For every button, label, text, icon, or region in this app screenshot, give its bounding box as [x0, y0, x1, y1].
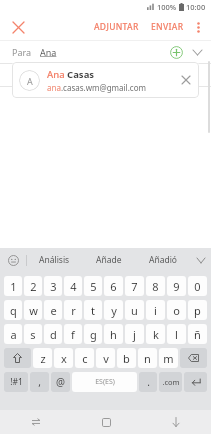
button[interactable]: d — [44, 324, 62, 344]
button[interactable]: 9 — [167, 276, 186, 296]
button[interactable]: q — [4, 300, 22, 320]
staticText: ñ — [194, 327, 201, 342]
button[interactable]: 4 — [64, 276, 82, 296]
button[interactable]: s — [24, 324, 42, 344]
button[interactable]: p — [188, 300, 207, 320]
staticText: ES(ES) — [95, 377, 115, 387]
button[interactable]: b — [117, 348, 136, 368]
button[interactable]: Quitar sugerencia — [178, 72, 194, 88]
button[interactable]: ENVIAR — [147, 17, 188, 37]
button[interactable]: Más sugerencias — [191, 248, 211, 272]
staticText: c — [82, 351, 88, 366]
button[interactable]: u — [125, 300, 144, 320]
staticText: d — [50, 327, 57, 342]
staticText: t — [91, 303, 95, 318]
button[interactable]: Atrás — [141, 410, 211, 434]
button[interactable]: c — [75, 348, 94, 368]
button[interactable]: Intro — [184, 372, 207, 392]
button[interactable]: Emoji — [0, 248, 26, 272]
staticText: Añade — [96, 254, 122, 266]
button[interactable]: 2 — [24, 276, 42, 296]
button[interactable]: Inicio — [71, 410, 141, 434]
button[interactable]: k — [146, 324, 165, 344]
button[interactable]: Recientes — [0, 410, 71, 434]
button[interactable]: 0 — [188, 276, 207, 296]
button[interactable]: 5 — [84, 276, 102, 296]
staticText: 9 — [173, 279, 180, 294]
button[interactable]: j — [125, 324, 144, 344]
staticText: l — [175, 327, 178, 342]
button[interactable]: a — [4, 324, 22, 344]
button[interactable]: r — [64, 300, 82, 320]
staticText: Asunto — [12, 69, 42, 81]
staticText: u — [131, 303, 138, 318]
staticText: z — [40, 351, 46, 366]
button[interactable]: Borrar — [180, 348, 207, 368]
button[interactable]: Cerrar — [6, 15, 30, 39]
staticText: y — [111, 303, 117, 318]
staticText: j — [133, 327, 136, 342]
button[interactable]: ADJUNTAR — [90, 17, 143, 37]
staticText: ENVIAR — [151, 21, 184, 33]
staticText: Para — [12, 46, 32, 58]
button[interactable]: 1 — [4, 276, 22, 296]
staticText: 0 — [194, 279, 201, 294]
staticText: n — [144, 351, 151, 366]
staticText: r — [71, 303, 76, 318]
staticText: @ — [56, 375, 65, 389]
staticText: 4 — [70, 279, 77, 294]
staticText: 7 — [131, 279, 138, 294]
button[interactable]: !#1 — [4, 372, 28, 392]
button[interactable]: f — [64, 324, 82, 344]
staticText: 8 — [152, 279, 159, 294]
button[interactable]: Añadir contacto — [167, 43, 185, 61]
button[interactable]: ñ — [188, 324, 207, 344]
staticText: m — [163, 351, 174, 366]
staticText: 6 — [110, 279, 117, 294]
button[interactable]: z — [33, 348, 52, 368]
staticText: f — [71, 327, 75, 342]
staticText: !#1 — [10, 376, 23, 388]
button[interactable]: 8 — [146, 276, 165, 296]
button[interactable]: 3 — [44, 276, 62, 296]
staticText: . — [147, 375, 150, 389]
button[interactable]: .com — [159, 372, 182, 392]
button[interactable]: y — [104, 300, 123, 320]
staticText: Ana — [40, 46, 57, 58]
button[interactable]: e — [44, 300, 62, 320]
button[interactable]: v — [96, 348, 115, 368]
button[interactable]: , — [30, 372, 49, 392]
button[interactable]: Análisis — [27, 248, 81, 272]
button[interactable]: ES(ES) — [72, 372, 137, 392]
staticText: p — [194, 303, 201, 318]
button[interactable]: x — [54, 348, 73, 368]
staticText: Ana Casas — [47, 68, 95, 81]
button[interactable]: Añade — [81, 248, 136, 272]
button[interactable]: l — [167, 324, 186, 344]
button[interactable]: 7 — [125, 276, 144, 296]
button[interactable]: i — [146, 300, 165, 320]
staticText: 100% — [157, 2, 177, 12]
button[interactable]: Mayúsculas — [4, 348, 31, 368]
button[interactable]: Expandir — [188, 43, 206, 61]
staticText: 3 — [50, 279, 57, 294]
button[interactable]: @ — [51, 372, 70, 392]
staticText: , — [38, 375, 41, 389]
staticText: Análisis — [39, 254, 70, 266]
button[interactable]: o — [167, 300, 186, 320]
button[interactable]: A — [12, 62, 199, 98]
staticText: i — [154, 303, 157, 318]
staticText: o — [173, 303, 180, 318]
button[interactable]: . — [139, 372, 157, 392]
button[interactable]: n — [138, 348, 157, 368]
staticText: 1 — [10, 279, 17, 294]
button[interactable]: Añadió — [136, 248, 191, 272]
button[interactable]: w — [24, 300, 42, 320]
button[interactable]: m — [159, 348, 178, 368]
button[interactable]: 6 — [104, 276, 123, 296]
staticText: ana.casas.wm@gmail.com — [47, 82, 146, 93]
button[interactable]: Más opciones — [188, 17, 208, 37]
button[interactable]: t — [84, 300, 102, 320]
button[interactable]: h — [104, 324, 123, 344]
button[interactable]: g — [84, 324, 102, 344]
